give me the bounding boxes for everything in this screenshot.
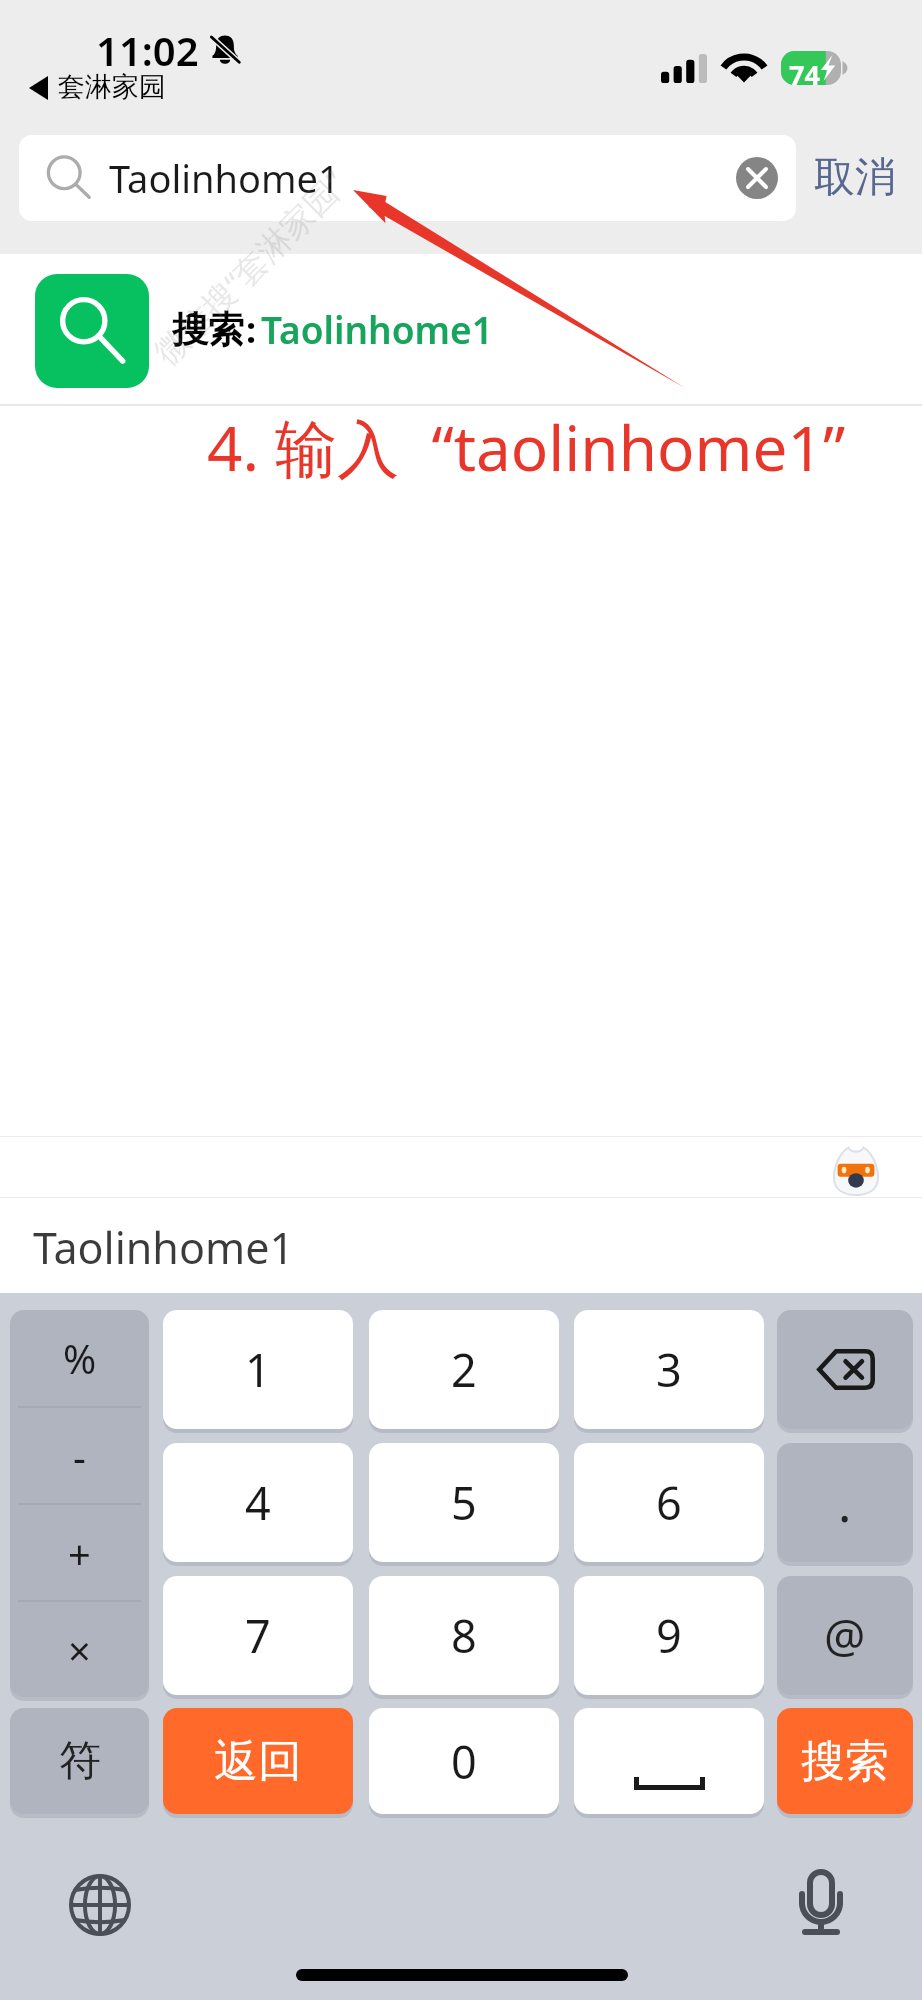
button[interactable]: 搜索 — [0, 254, 922, 404]
button[interactable]: Voice input — [799, 1869, 843, 1937]
staticText: 8 — [451, 1605, 477, 1666]
button[interactable]: 5 — [369, 1443, 559, 1562]
button[interactable]: 8 — [369, 1576, 559, 1695]
staticText: 搜索 — [172, 307, 244, 352]
button[interactable]: 7 — [163, 1576, 353, 1695]
button[interactable]: 搜索 — [777, 1708, 913, 1814]
button[interactable]: 2 — [369, 1310, 559, 1429]
button[interactable]: + — [10, 1505, 149, 1600]
staticText: Taolinhome1 — [33, 1218, 295, 1277]
button[interactable]: 3 — [574, 1310, 764, 1429]
staticText: 9 — [656, 1605, 682, 1666]
staticText: 取消 — [814, 152, 896, 204]
button[interactable]: 符 — [10, 1708, 149, 1814]
staticText: + — [68, 1526, 91, 1580]
staticText: 11:02 — [96, 23, 199, 77]
staticText: × — [68, 1623, 91, 1677]
staticText: 微信搜“套淋家园” — [144, 161, 356, 373]
button[interactable]: 9 — [574, 1576, 764, 1695]
staticText: 5 — [451, 1472, 477, 1533]
button[interactable]: 0 — [369, 1708, 559, 1814]
button[interactable] — [777, 1310, 913, 1429]
button[interactable]: Taolinhome1 — [19, 135, 796, 221]
staticText: : — [246, 305, 257, 354]
button[interactable]: @ — [777, 1576, 913, 1695]
staticText: . — [838, 1469, 852, 1537]
staticText: 4 — [245, 1472, 271, 1533]
button[interactable]: Clear — [736, 157, 778, 199]
button[interactable]: - — [10, 1408, 149, 1503]
button[interactable] — [574, 1708, 764, 1814]
button[interactable]: 1 — [163, 1310, 353, 1429]
button[interactable]: 返回 — [163, 1708, 353, 1814]
staticText: 套淋家园 — [58, 70, 166, 104]
button[interactable]: 6 — [574, 1443, 764, 1562]
staticText: Taolinhome1 — [109, 152, 340, 204]
staticText: 74 — [789, 56, 820, 93]
staticText: @ — [824, 1604, 866, 1667]
staticText: 符 — [59, 1735, 101, 1788]
staticText: 7 — [245, 1605, 271, 1666]
staticText: 6 — [656, 1472, 682, 1533]
button[interactable]: % — [10, 1310, 149, 1406]
button[interactable]: 4 — [163, 1443, 353, 1562]
button[interactable]: . — [777, 1443, 913, 1562]
button[interactable]: 取消 — [810, 135, 900, 221]
staticText: 4. 输入 “taolinhome1” — [207, 405, 846, 490]
staticText: 0 — [451, 1731, 477, 1792]
staticText: 1 — [245, 1339, 271, 1400]
staticText: 搜索 — [801, 1734, 889, 1789]
staticText: 2 — [451, 1339, 477, 1400]
button[interactable]: × — [10, 1602, 149, 1697]
staticText: 返回 — [214, 1734, 302, 1789]
staticText: Taolinhome1 — [261, 304, 493, 354]
staticText: - — [73, 1429, 86, 1483]
button[interactable]: Emoji — [833, 1143, 879, 1195]
staticText: 3 — [656, 1339, 682, 1400]
button[interactable]: Change keyboard — [69, 1874, 131, 1936]
staticText: % — [63, 1331, 97, 1385]
